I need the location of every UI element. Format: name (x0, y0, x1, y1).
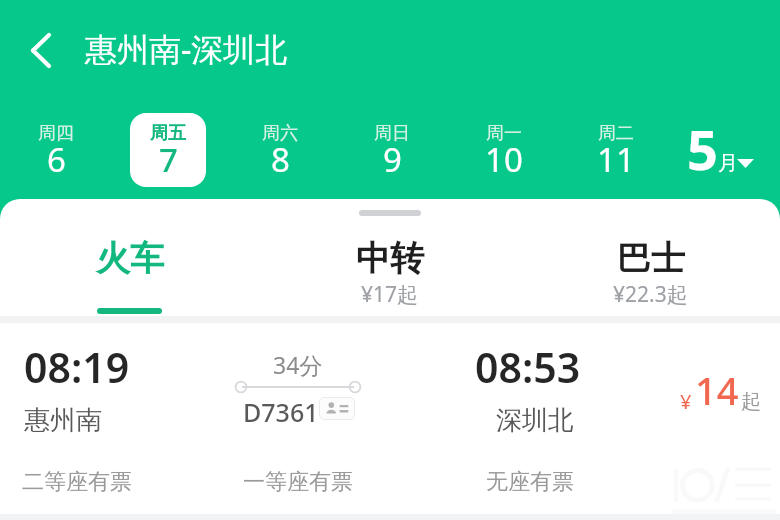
staticText: 9 (383, 137, 402, 182)
button[interactable]: 5 (672, 105, 780, 195)
staticText: 周四 (38, 122, 74, 145)
staticText: 周一 (486, 122, 522, 145)
staticText: 14 (695, 364, 739, 416)
button[interactable]: 火车 (0, 216, 260, 316)
button[interactable]: 周五 (112, 105, 224, 195)
staticText: 周六 (262, 122, 298, 145)
staticText: 6 (47, 137, 66, 182)
button[interactable]: 周二 (560, 105, 672, 195)
staticText: ¥17起 (361, 280, 419, 309)
button[interactable]: 周六 (224, 105, 336, 195)
staticText: 周二 (598, 122, 634, 145)
staticText: ¥ (680, 388, 692, 415)
button[interactable]: Back (8, 16, 74, 84)
staticText: 月 (718, 151, 738, 176)
button[interactable]: 周一 (448, 105, 560, 195)
staticText: 34分 (273, 349, 323, 380)
button[interactable]: 08:19 (0, 323, 780, 520)
staticText: D7361 (243, 395, 319, 429)
button[interactable]: 周四 (0, 105, 112, 195)
staticText: 08:53 (475, 339, 581, 395)
staticText: 周五 (150, 122, 186, 145)
staticText: 中转 (356, 237, 424, 280)
staticText: 5 (687, 112, 718, 186)
staticText: ¥22.3起 (613, 280, 688, 309)
staticText: 巴士 (617, 237, 685, 280)
button[interactable]: 周日 (336, 105, 448, 195)
staticText: 无座有票 (486, 468, 574, 496)
staticText: 11 (597, 137, 635, 182)
staticText: 8 (271, 137, 290, 182)
button[interactable]: 中转 (260, 216, 520, 316)
staticText: 惠州南-深圳北 (85, 27, 288, 71)
staticText: 08:19 (24, 339, 130, 395)
staticText: 10 (485, 137, 523, 182)
staticText: 二等座有票 (22, 468, 132, 496)
staticText: 深圳北 (496, 404, 574, 437)
staticText: 7 (159, 137, 178, 182)
button[interactable]: 巴士 (520, 216, 780, 316)
staticText: 惠州南 (24, 404, 102, 437)
staticText: 周日 (374, 122, 410, 145)
staticText: 起 (741, 389, 761, 414)
staticText: 一等座有票 (243, 468, 353, 496)
staticText: 火车 (96, 237, 164, 280)
